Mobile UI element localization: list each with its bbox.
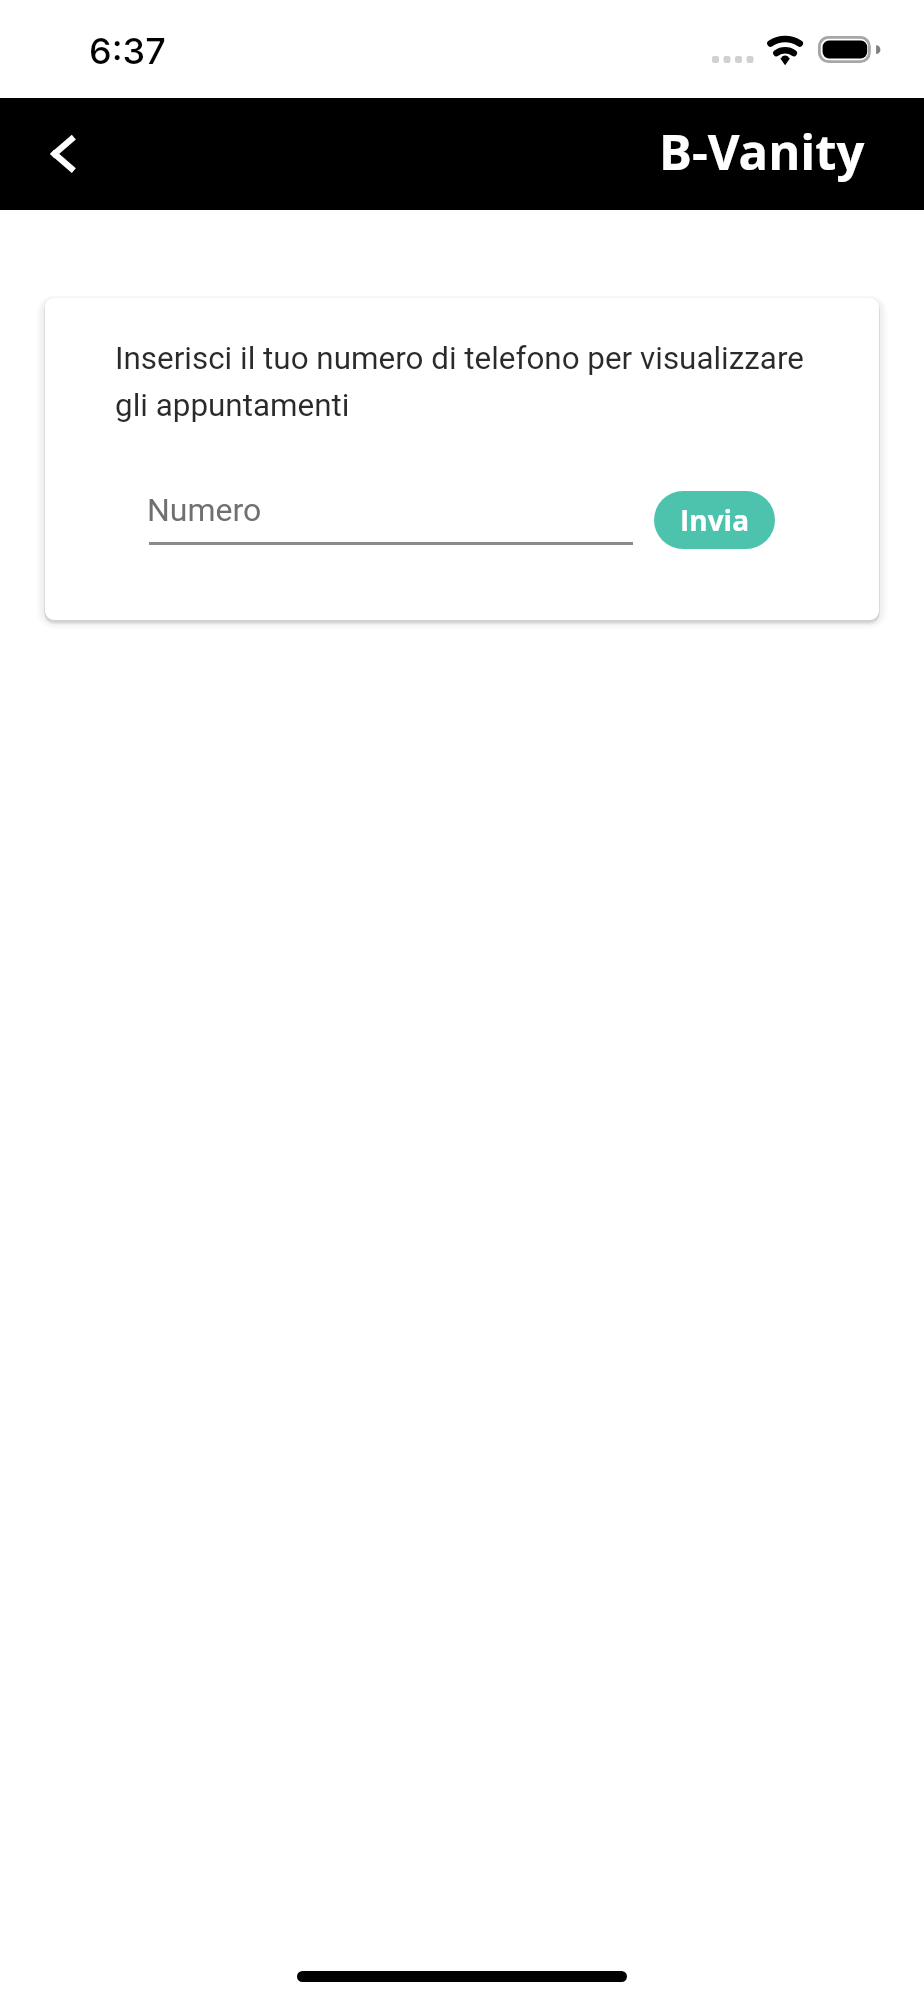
- button[interactable]: Invia: [654, 491, 775, 549]
- staticText: Numero: [147, 491, 262, 529]
- staticText: Invia: [680, 501, 750, 539]
- staticText: B-Vanity: [659, 118, 865, 185]
- staticText: 6:37: [89, 29, 166, 73]
- button[interactable]: Back: [23, 115, 101, 193]
- staticText: Inserisci il tuo numero di telefono per …: [115, 340, 815, 424]
- button[interactable]: Numero: [147, 470, 633, 552]
